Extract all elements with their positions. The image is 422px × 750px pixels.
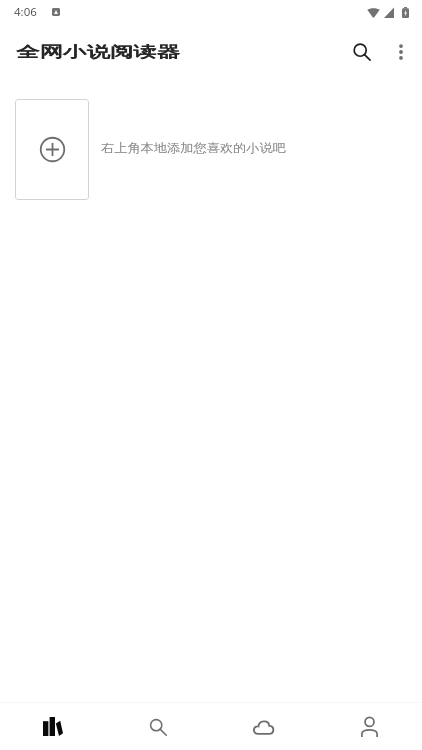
button[interactable]: Profile (316, 703, 422, 750)
button[interactable]: Cloud (210, 703, 316, 750)
staticText: 全网小说阅读器 (16, 43, 180, 62)
staticText: 右上角本地添加您喜欢的小说吧 (101, 140, 286, 155)
button[interactable]: More options (380, 29, 422, 71)
button[interactable]: Search (105, 703, 210, 750)
button[interactable]: Add book (15, 99, 89, 200)
button[interactable]: Bookshelf (0, 703, 105, 750)
button[interactable]: Search (334, 27, 380, 73)
staticText: 全网小说阅读器 (16, 43, 180, 62)
staticText: 4:06 (14, 4, 37, 20)
